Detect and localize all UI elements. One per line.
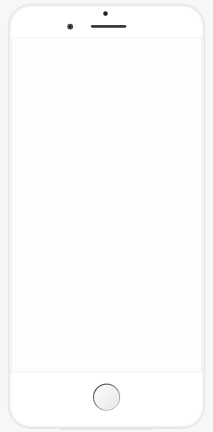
button[interactable]: iPhone device frame [0,0,213,432]
